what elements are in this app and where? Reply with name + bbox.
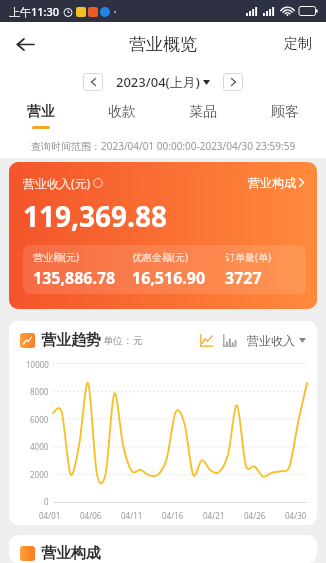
staticText: 定制	[284, 35, 312, 53]
staticText: 订单量(单)	[225, 250, 271, 264]
button[interactable]: Back	[6, 25, 44, 63]
staticText: 查询时间范围：2023/04/01 00:00:00-2023/04/30 23…	[31, 139, 296, 153]
staticText: 收款	[108, 103, 136, 121]
button[interactable]: 收款	[81, 103, 162, 129]
button[interactable]: 营业	[0, 103, 81, 129]
button[interactable]: Bar chart	[221, 332, 238, 349]
staticText: 6000	[30, 414, 49, 425]
staticText: 营业构成	[41, 544, 101, 563]
staticText: 营业收入	[247, 333, 295, 348]
staticText: 16,516.90	[132, 267, 206, 289]
staticText: 04/01	[39, 510, 61, 521]
staticText: 菜品	[189, 103, 217, 121]
staticText: 优惠金额(元)	[132, 250, 188, 264]
staticText: 营业额(元)	[33, 250, 79, 264]
button[interactable]: 定制	[270, 23, 326, 65]
staticText: 04/21	[203, 510, 225, 521]
button[interactable]: Line chart	[198, 332, 215, 349]
staticText: 04/26	[244, 510, 266, 521]
staticText: 04/11	[121, 510, 143, 521]
staticText: 8000	[30, 386, 49, 397]
staticText: 0	[44, 496, 49, 507]
staticText: 营业构成	[248, 175, 296, 190]
staticText: 3727	[225, 267, 262, 289]
button[interactable]: 顾客	[244, 103, 326, 129]
button[interactable]: 菜品	[162, 103, 244, 129]
staticText: 营业收入(元)	[23, 175, 91, 191]
staticText: 10000	[26, 359, 49, 370]
staticText: 单位：元	[103, 334, 143, 347]
staticText: 135,886.78	[33, 267, 116, 289]
staticText: 2023/04(上月)	[116, 73, 200, 91]
staticText: 营业	[27, 103, 55, 121]
staticText: 营业概览	[129, 34, 197, 55]
button[interactable]: 营业构成	[9, 535, 317, 563]
staticText: 营业趋势	[41, 331, 101, 350]
button[interactable]: 2023/04(上月)	[114, 70, 212, 94]
staticText: 04/30	[285, 510, 307, 521]
staticText: 4000	[30, 441, 49, 452]
staticText: 04/16	[162, 510, 184, 521]
button[interactable]: 营业收入	[247, 330, 306, 351]
staticText: 119,369.88	[23, 197, 167, 235]
button[interactable]: 营业构成	[246, 173, 306, 192]
staticText: 2000	[30, 469, 49, 480]
staticText: 04/06	[80, 510, 102, 521]
button[interactable]: 营业收入(元)	[9, 162, 317, 309]
button[interactable]: Previous month	[83, 73, 103, 91]
button[interactable]: Next month	[223, 73, 243, 91]
staticText: 上午11:30	[9, 4, 60, 19]
staticText: 顾客	[271, 103, 299, 121]
